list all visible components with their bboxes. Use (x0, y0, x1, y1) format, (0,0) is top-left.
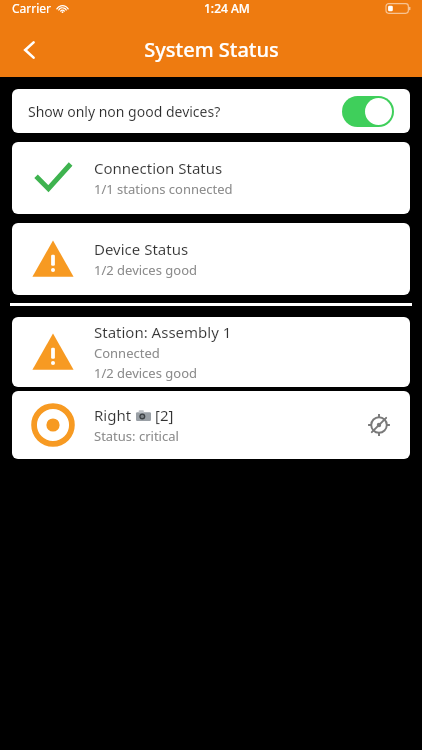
button[interactable]: Device Status (12, 223, 410, 295)
button[interactable]: Connection Status (12, 142, 410, 214)
staticText: Connected (94, 344, 160, 362)
staticText: Station: Assembly 1 (94, 322, 232, 342)
button[interactable]: Station: Assembly 1 (12, 317, 410, 387)
staticText: Show only non good devices? (28, 102, 221, 121)
button[interactable]: Back (8, 28, 52, 72)
button[interactable]: Right (12, 391, 410, 459)
staticText: Connection Status (94, 158, 223, 178)
staticText: Device Status (94, 239, 189, 259)
staticText: Status: critical (94, 427, 179, 445)
staticText: [2] (155, 405, 174, 425)
staticText: 1/2 devices good (94, 364, 198, 382)
staticText: 1:24 AM (204, 0, 250, 16)
button[interactable]: Location off (361, 407, 397, 443)
button[interactable]: Show only non good devices toggle (342, 96, 394, 127)
staticText: Carrier (12, 0, 52, 16)
staticText: Right (94, 405, 132, 425)
button[interactable]: Show only non good devices? (12, 89, 410, 133)
staticText: 1/1 stations connected (94, 180, 233, 198)
staticText: 1/2 devices good (94, 261, 198, 279)
staticText: System Status (144, 36, 279, 63)
